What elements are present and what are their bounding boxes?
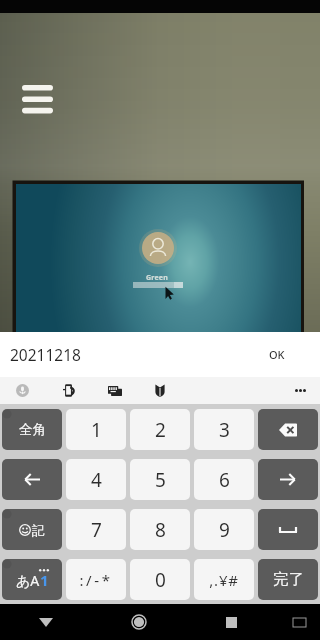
- button[interactable]: One-handed mode: [50, 377, 89, 404]
- staticText: 20211218: [10, 344, 81, 365]
- staticText: 2: [155, 417, 166, 443]
- button[interactable]: 5: [130, 459, 190, 500]
- button[interactable]: Menu: [10, 73, 65, 126]
- button[interactable]: Switch keyboard: [95, 377, 134, 404]
- button[interactable]: 1: [66, 409, 126, 450]
- staticText: あA: [16, 571, 40, 590]
- button[interactable]: 4: [66, 459, 126, 500]
- button[interactable]: [258, 409, 318, 450]
- staticText: 1: [91, 417, 102, 443]
- button[interactable]: Hide keyboard: [0, 604, 92, 640]
- button[interactable]: OK: [254, 332, 299, 377]
- button[interactable]: Recents: [185, 604, 278, 640]
- button[interactable]: [258, 459, 318, 500]
- button[interactable]: 0: [130, 559, 190, 600]
- button[interactable]: 記: [2, 509, 62, 550]
- button[interactable]: More options: [286, 377, 314, 404]
- staticText: OK: [269, 347, 285, 362]
- button[interactable]: 2: [130, 409, 190, 450]
- button[interactable]: Secure input: [140, 377, 179, 404]
- staticText: 8: [155, 517, 166, 543]
- staticText: 9: [219, 517, 230, 543]
- button[interactable]: ,.¥#: [194, 559, 254, 600]
- button[interactable]: [258, 509, 318, 550]
- staticText: 7: [91, 517, 102, 543]
- staticText: 完了: [273, 570, 304, 589]
- button[interactable]: [2, 459, 62, 500]
- staticText: 5: [155, 467, 166, 493]
- staticText: 4: [91, 467, 102, 493]
- button[interactable]: 完了: [258, 559, 318, 600]
- button[interactable]: 7: [66, 509, 126, 550]
- staticText: ,.¥#: [209, 570, 239, 590]
- button[interactable]: 8: [130, 509, 190, 550]
- button[interactable]: あA: [2, 559, 62, 600]
- button[interactable]: 3: [194, 409, 254, 450]
- button[interactable]: Voice input: [3, 377, 42, 404]
- staticText: Green: [146, 273, 168, 283]
- button[interactable]: 6: [194, 459, 254, 500]
- staticText: 記: [32, 522, 45, 538]
- button[interactable]: :/-*: [66, 559, 126, 600]
- button[interactable]: Home: [92, 604, 185, 640]
- button[interactable]: Switch input method: [278, 604, 320, 640]
- staticText: :/-*: [79, 570, 113, 590]
- staticText: 0: [155, 567, 166, 593]
- staticText: 3: [219, 417, 230, 443]
- button[interactable]: 9: [194, 509, 254, 550]
- staticText: 1: [40, 570, 49, 590]
- staticText: 全角: [19, 421, 46, 438]
- button[interactable]: 全角: [2, 409, 62, 450]
- staticText: 6: [219, 467, 230, 493]
